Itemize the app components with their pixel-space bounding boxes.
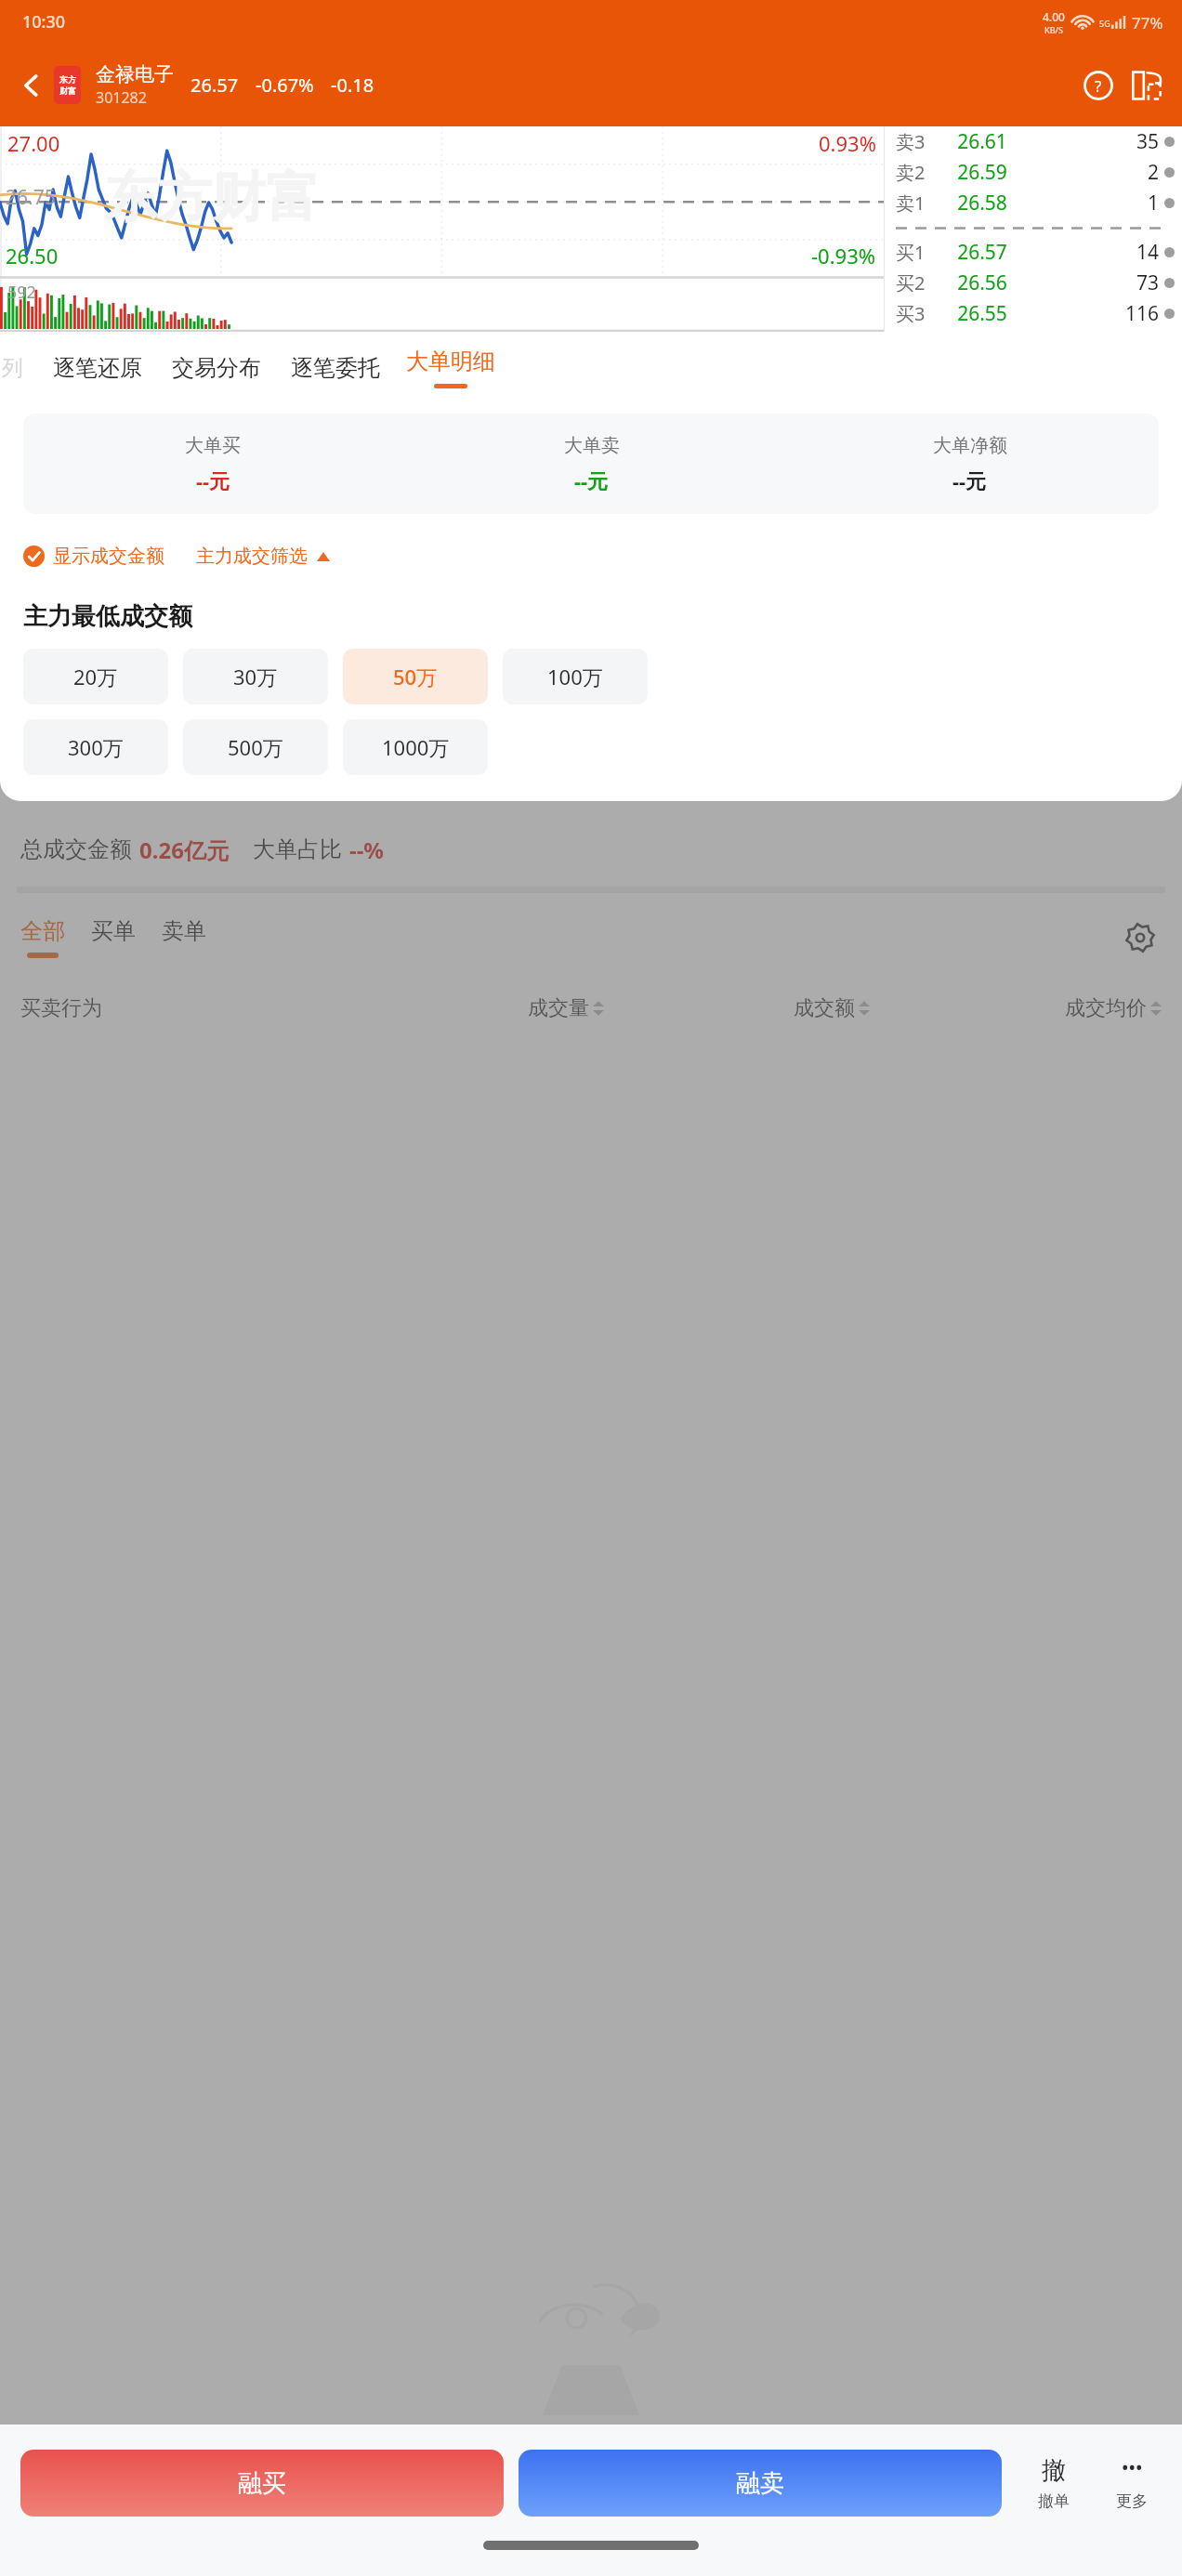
- button[interactable]: 成交量: [338, 995, 604, 1021]
- staticText: 26.57: [190, 72, 239, 98]
- staticText: 显示成交金额: [53, 545, 164, 568]
- button[interactable]: 逐笔还原: [44, 341, 151, 395]
- staticText: 73: [1039, 269, 1159, 296]
- staticText: 26.61: [926, 128, 1039, 155]
- staticText: -0.93%: [811, 242, 876, 269]
- button[interactable]: Help: [1078, 65, 1119, 106]
- staticText: 卖1: [896, 191, 926, 216]
- staticText: 大单买: [185, 434, 241, 457]
- staticText: 500万: [228, 733, 283, 761]
- staticText: 撤: [1042, 2455, 1066, 2486]
- staticText: 成交量: [528, 995, 589, 1021]
- button[interactable]: 显示成交金额: [23, 545, 164, 568]
- staticText: 30万: [233, 663, 278, 690]
- button[interactable]: 成交均价: [870, 995, 1162, 1021]
- staticText: 大单卖: [564, 434, 620, 457]
- staticText: 东方: [59, 74, 76, 85]
- staticText: 全部: [20, 917, 65, 945]
- button[interactable]: 主力成交筛选: [196, 545, 330, 568]
- staticText: 买卖行为: [20, 995, 338, 1021]
- staticText: 20万: [73, 663, 118, 690]
- button[interactable]: 买1: [896, 237, 1182, 268]
- staticText: -0.67%: [256, 72, 314, 98]
- button[interactable]: 逐笔委托: [282, 341, 389, 395]
- button[interactable]: •••: [1102, 2455, 1162, 2511]
- button[interactable]: 成交额: [604, 995, 870, 1021]
- staticText: 0.93%: [819, 129, 876, 157]
- button[interactable]: 买单: [91, 917, 136, 958]
- staticText: --元: [196, 467, 230, 494]
- button[interactable]: 50万: [343, 649, 488, 704]
- staticText: 09:30: [17, 756, 62, 781]
- staticText: 27.00: [7, 129, 60, 157]
- staticText: 26.55: [926, 300, 1039, 327]
- staticText: 逐笔委托: [291, 354, 380, 382]
- staticText: --元: [574, 467, 609, 494]
- staticText: 26.58: [926, 190, 1039, 217]
- button[interactable]: 交易分布: [163, 341, 270, 395]
- button[interactable]: 卖单: [162, 917, 206, 958]
- button[interactable]: 大单卖: [402, 434, 781, 494]
- button[interactable]: 大单净额: [781, 434, 1159, 494]
- staticText: 成交额: [794, 995, 855, 1021]
- staticText: 卖3: [896, 129, 926, 154]
- button[interactable]: 30万: [183, 649, 328, 704]
- staticText: 列: [2, 355, 23, 382]
- staticText: 4.00: [1043, 9, 1065, 24]
- button[interactable]: 300万: [23, 719, 168, 775]
- button[interactable]: 卖1: [896, 188, 1182, 218]
- button[interactable]: 买3: [896, 298, 1182, 329]
- button[interactable]: 大单买: [23, 434, 402, 494]
- staticText: 卖2: [896, 160, 926, 185]
- staticText: 300万: [68, 733, 124, 761]
- staticText: 撤单: [1038, 2491, 1070, 2511]
- button[interactable]: 全部: [20, 917, 65, 958]
- staticText: 大单净额: [933, 434, 1007, 457]
- button[interactable]: 买2: [896, 268, 1182, 298]
- staticText: 26.75: [6, 184, 56, 211]
- staticText: 0.26亿元: [139, 835, 229, 865]
- staticText: 主力成交筛选: [196, 545, 308, 568]
- button[interactable]: 融买: [20, 2450, 504, 2517]
- staticText: 买单: [91, 917, 136, 945]
- button[interactable]: 东方财富: [54, 66, 81, 104]
- staticText: 大单占比: [253, 835, 342, 863]
- staticText: 大单明细: [406, 348, 495, 375]
- button[interactable]: Back: [9, 63, 54, 108]
- staticText: 10:30: [22, 10, 66, 33]
- staticText: 50万: [393, 663, 438, 690]
- staticText: •••: [1122, 2455, 1143, 2480]
- staticText: 买2: [896, 270, 926, 296]
- button[interactable]: 500万: [183, 719, 328, 775]
- staticText: -0.18: [331, 72, 374, 98]
- button[interactable]: 20万: [23, 649, 168, 704]
- button[interactable]: 卖3: [896, 126, 1182, 157]
- staticText: 26.50: [6, 242, 59, 269]
- button[interactable]: 卖2: [896, 157, 1182, 188]
- staticText: 东方财富: [104, 164, 320, 231]
- staticText: 逐笔还原: [53, 354, 142, 382]
- staticText: 买1: [896, 240, 926, 265]
- staticText: 卖单: [162, 917, 206, 945]
- button[interactable]: 1000万: [343, 719, 488, 775]
- button[interactable]: 融卖: [519, 2450, 1002, 2517]
- staticText: 26.59: [926, 159, 1039, 186]
- button[interactable]: Settings: [1119, 916, 1162, 959]
- staticText: 14: [1039, 239, 1159, 266]
- staticText: 买3: [896, 301, 926, 326]
- staticText: 35: [1039, 128, 1159, 155]
- staticText: 1: [1039, 190, 1159, 217]
- button[interactable]: Split screen: [1126, 65, 1167, 106]
- staticText: 2: [1039, 159, 1159, 186]
- button[interactable]: 撤: [1024, 2455, 1083, 2511]
- staticText: KB/S: [1044, 24, 1063, 35]
- button[interactable]: 100万: [503, 649, 648, 704]
- staticText: 1000万: [382, 733, 450, 761]
- staticText: 592: [7, 281, 36, 304]
- staticText: 主力最低成交额: [23, 601, 192, 632]
- button[interactable]: 大单明细: [401, 342, 501, 394]
